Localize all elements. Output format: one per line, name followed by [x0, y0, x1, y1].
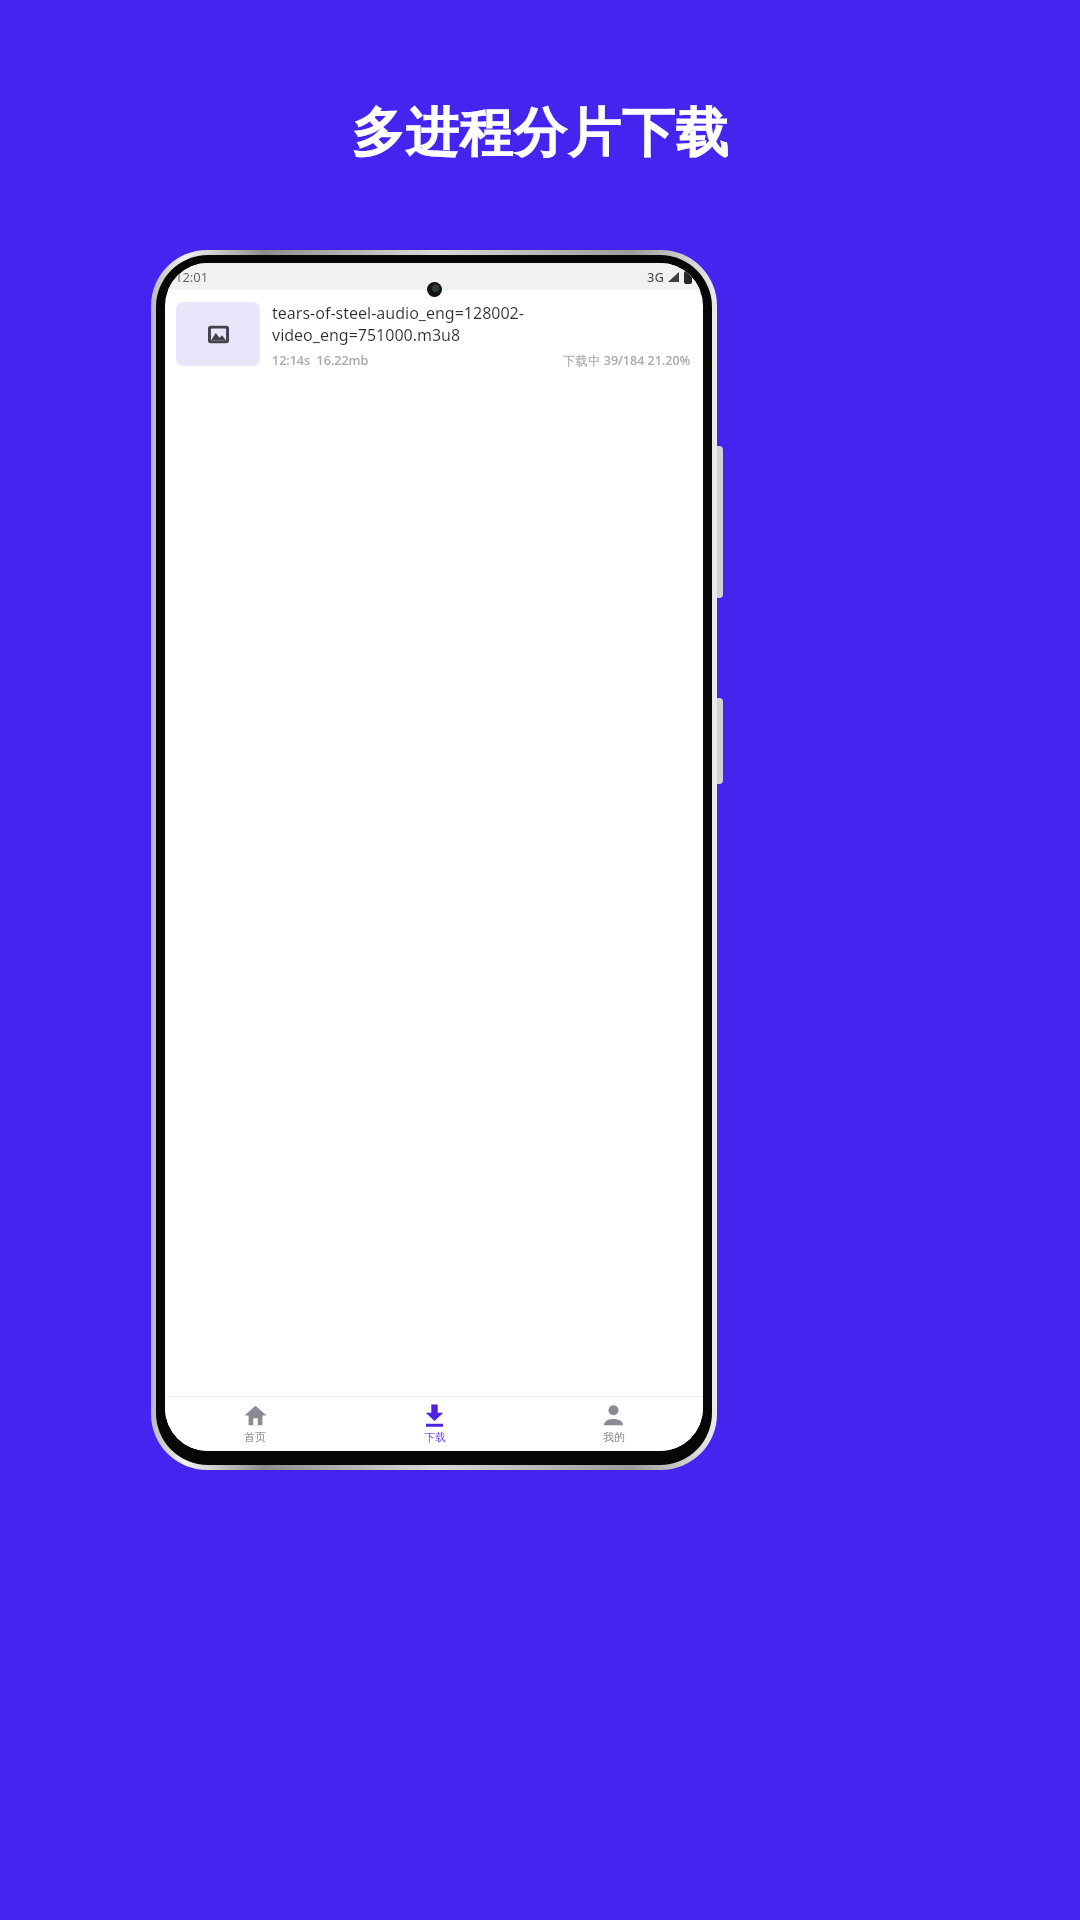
button[interactable]: 我的 [524, 1397, 703, 1451]
staticText: 我的 [603, 1430, 625, 1444]
button[interactable]: 下载 [345, 1397, 524, 1451]
staticText: 3G [647, 268, 664, 286]
button[interactable]: tears-of-steel-audio_eng=128002-video_en… [165, 290, 703, 377]
staticText: tears-of-steel-audio_eng=128002-video_en… [272, 302, 691, 346]
staticText: 12:14s 16.22mb [272, 352, 369, 369]
button[interactable]: 首页 [165, 1397, 345, 1451]
staticText: 首页 [244, 1430, 266, 1444]
staticText: 下载 [424, 1430, 446, 1444]
staticText: 12:01 [175, 268, 209, 286]
staticText: 多进程分片下载 [351, 100, 729, 167]
staticText: 下载中 39/184 21.20% [563, 352, 691, 369]
